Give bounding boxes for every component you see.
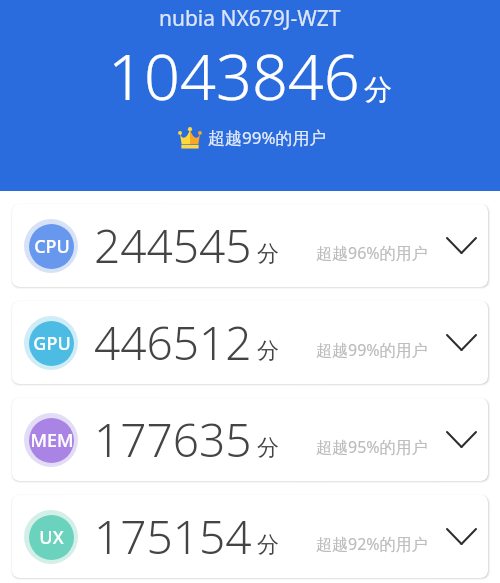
staticText: 超越99%的用户 (208, 126, 327, 149)
staticText: 分 (257, 337, 279, 365)
staticText: 1043846 (108, 33, 360, 119)
staticText: 分 (257, 240, 279, 268)
staticText: 分 (257, 434, 279, 462)
staticText: CPU (34, 234, 70, 259)
button[interactable]: CPU (12, 204, 488, 287)
button[interactable]: MEM (12, 398, 488, 481)
button[interactable]: GPU (12, 301, 488, 384)
staticText: 超越99%的用户 (316, 339, 428, 361)
staticText: 175154 (94, 505, 252, 568)
staticText: 超越95%的用户 (316, 436, 428, 458)
staticText: 177635 (94, 408, 252, 471)
staticText: nubia NX679J-WZT (159, 4, 341, 33)
staticText: 超越92%的用户 (316, 533, 428, 555)
other: Expand (446, 334, 477, 351)
button[interactable]: UX (12, 495, 488, 578)
staticText: 244545 (94, 214, 252, 277)
staticText: 446512 (94, 311, 252, 374)
staticText: GPU (33, 331, 71, 356)
other: Expand (446, 237, 477, 254)
staticText: UX (39, 525, 64, 550)
other: Expand (446, 431, 477, 448)
staticText: 超越96%的用户 (316, 242, 428, 264)
other: Expand (446, 528, 477, 545)
staticText: 分 (257, 531, 279, 559)
staticText: MEM (30, 428, 74, 453)
staticText: 分 (364, 72, 392, 107)
